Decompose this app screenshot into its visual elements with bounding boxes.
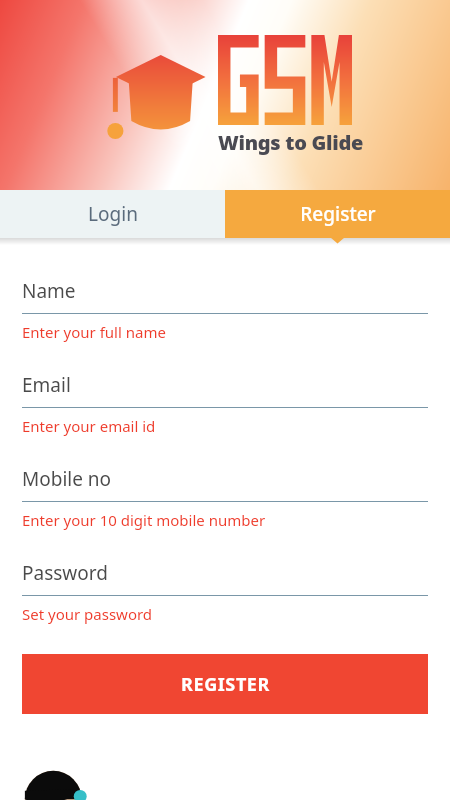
staticText: Password <box>22 560 108 586</box>
staticText: Set your password <box>22 604 153 624</box>
button[interactable]: Password <box>22 542 428 636</box>
button[interactable]: Name <box>22 260 428 354</box>
staticText: REGISTER <box>181 672 270 697</box>
button[interactable]: Login <box>0 190 225 238</box>
button[interactable]: Mobile no <box>22 448 428 542</box>
staticText: Register <box>300 201 376 227</box>
staticText: Name <box>22 278 76 304</box>
staticText: Wings to Glide <box>218 129 363 156</box>
staticText: Enter your email id <box>22 416 156 436</box>
button[interactable]: Email <box>22 354 428 448</box>
staticText: Email <box>22 372 71 398</box>
staticText: Enter your full name <box>22 322 166 342</box>
button[interactable]: Register <box>225 190 450 238</box>
button[interactable]: REGISTER <box>22 654 428 714</box>
staticText: Login <box>88 201 138 227</box>
staticText: Enter your 10 digit mobile number <box>22 510 266 530</box>
staticText: Mobile no <box>22 466 112 492</box>
